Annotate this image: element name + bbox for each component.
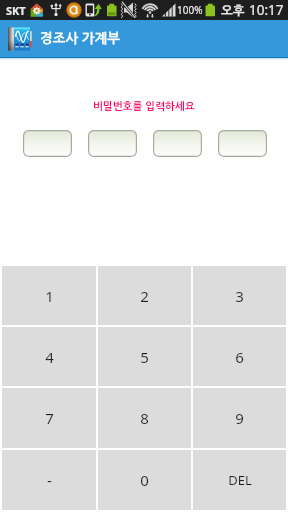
staticText: 경조사 가계부 (40, 32, 120, 45)
staticText: 7 (45, 408, 54, 428)
staticText: 8 (140, 408, 149, 428)
button[interactable]: DEL (193, 450, 286, 510)
button[interactable]: 1 (2, 266, 96, 325)
staticText: 5 (140, 347, 149, 367)
staticText: 2 (140, 286, 149, 306)
button[interactable]: - (2, 450, 96, 510)
staticText: 오후 (221, 4, 245, 16)
button[interactable] (218, 130, 267, 157)
button[interactable]: 9 (193, 388, 286, 448)
button[interactable]: 5 (98, 327, 191, 386)
staticText: 10:17 (249, 1, 284, 19)
button[interactable]: 4 (2, 327, 96, 386)
button[interactable]: 8 (98, 388, 191, 448)
button[interactable]: 6 (193, 327, 286, 386)
button[interactable]: 7 (2, 388, 96, 448)
button[interactable] (88, 130, 137, 157)
staticText: 0 (140, 470, 149, 490)
button[interactable]: 3 (193, 266, 286, 325)
staticText: 비밀번호를 입력하세요 (93, 101, 195, 111)
button[interactable]: 2 (98, 266, 191, 325)
button[interactable] (153, 130, 202, 157)
staticText: 4 (45, 347, 54, 367)
staticText: 9 (235, 408, 244, 428)
button[interactable]: 0 (98, 450, 191, 510)
staticText: 100% (177, 3, 203, 17)
staticText: DEL (228, 471, 252, 489)
staticText: 3 (235, 286, 244, 306)
staticText: 1 (45, 286, 54, 306)
button[interactable]: 경조사 가계부 (0, 20, 288, 57)
button[interactable] (23, 130, 72, 157)
staticText: SKT (6, 3, 26, 18)
staticText: - (47, 470, 52, 490)
staticText: 6 (235, 347, 244, 367)
